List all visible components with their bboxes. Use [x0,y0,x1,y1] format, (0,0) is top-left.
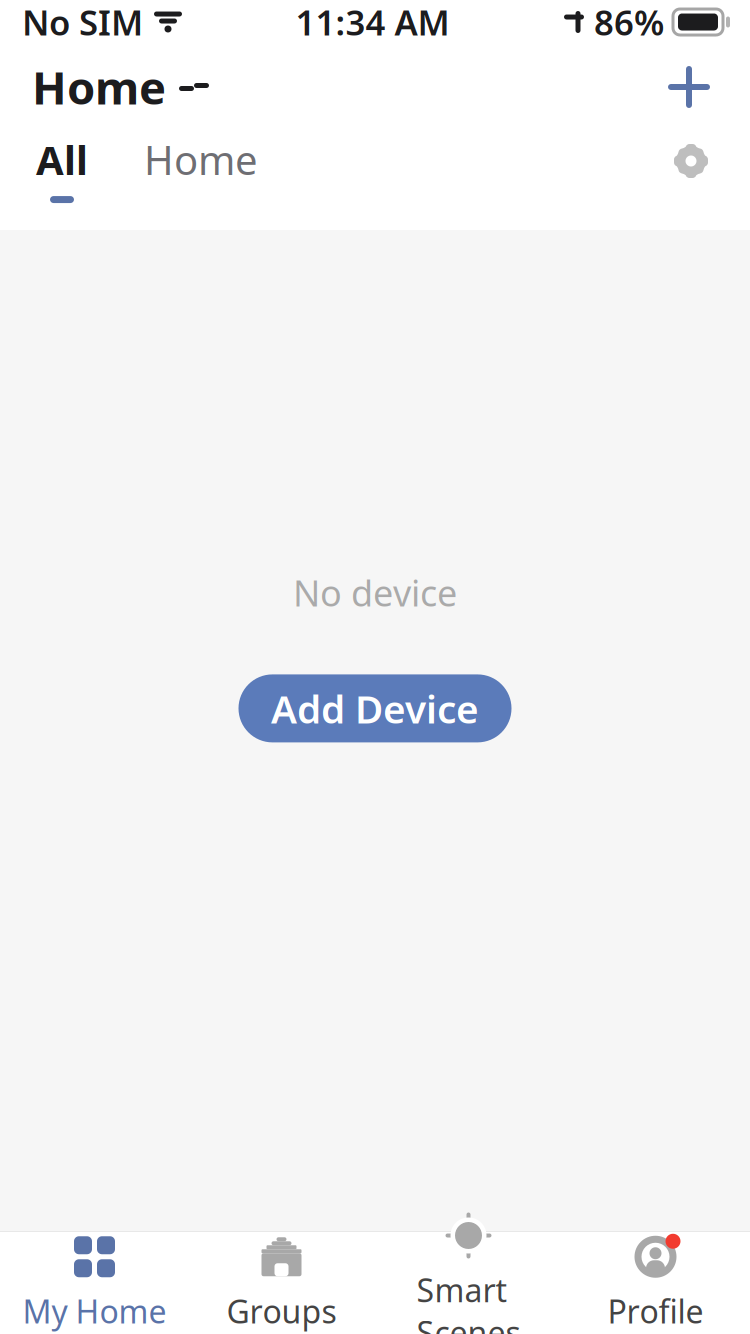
staticText: No SIM [22,0,143,45]
staticText: 11:34 AM [295,0,449,45]
staticText: Home [144,133,258,186]
staticText: No device [293,569,457,616]
staticText: Profile [607,1290,703,1332]
staticText: Home [32,57,166,117]
button[interactable]: Profile [562,1232,749,1334]
button[interactable]: All [30,133,94,203]
button[interactable]: Groups [188,1232,375,1334]
staticText: Smart Scenes [416,1268,520,1334]
staticText: Groups [226,1290,336,1332]
button[interactable]: Smart Scenes [375,1232,562,1334]
staticText: My Home [22,1290,166,1332]
staticText: All [36,133,88,186]
staticText: Add Device [271,683,479,734]
button[interactable]: Add Device [238,674,511,742]
button[interactable]: Settings [660,130,722,206]
button[interactable]: Home [94,133,258,203]
staticText: 86% [594,0,664,45]
button[interactable]: Home [32,45,218,129]
button[interactable]: My Home [1,1232,188,1334]
button[interactable]: Add [656,54,722,120]
